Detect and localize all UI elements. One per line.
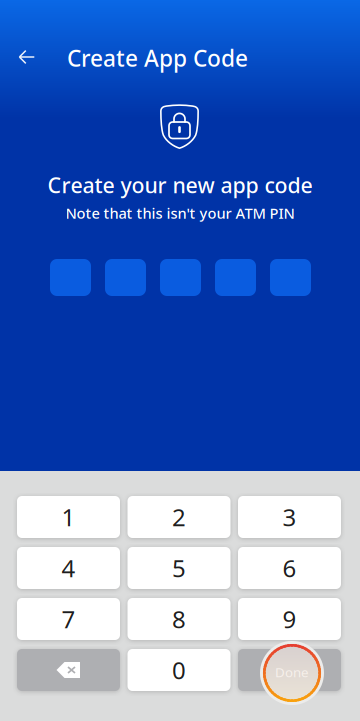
staticText: 3 xyxy=(282,501,296,533)
staticText: 6 xyxy=(282,552,296,584)
button[interactable]: Done xyxy=(238,649,341,691)
button[interactable]: 7 xyxy=(17,598,120,640)
button[interactable]: Back xyxy=(5,35,49,79)
button[interactable]: Delete xyxy=(17,649,120,691)
staticText: 9 xyxy=(282,603,296,635)
button[interactable]: 9 xyxy=(238,598,341,640)
staticText: Create App Code xyxy=(67,43,248,73)
button[interactable]: 0 xyxy=(127,649,230,691)
staticText: Note that this isn't your ATM PIN xyxy=(65,203,294,223)
staticText: 8 xyxy=(172,603,186,635)
button[interactable]: 3 xyxy=(238,496,341,538)
staticText: 5 xyxy=(172,552,186,584)
staticText: 7 xyxy=(61,603,75,635)
staticText: Create your new app code xyxy=(47,171,312,199)
button[interactable]: 6 xyxy=(238,547,341,589)
staticText: 1 xyxy=(61,501,75,533)
button[interactable]: 8 xyxy=(127,598,230,640)
staticText: 0 xyxy=(172,654,186,686)
button[interactable]: 4 xyxy=(17,547,120,589)
staticText: 2 xyxy=(172,501,186,533)
button[interactable]: 2 xyxy=(127,496,230,538)
staticText: Done xyxy=(275,663,309,681)
staticText: 4 xyxy=(61,552,75,584)
button[interactable]: 5 xyxy=(127,547,230,589)
button[interactable]: 1 xyxy=(17,496,120,538)
